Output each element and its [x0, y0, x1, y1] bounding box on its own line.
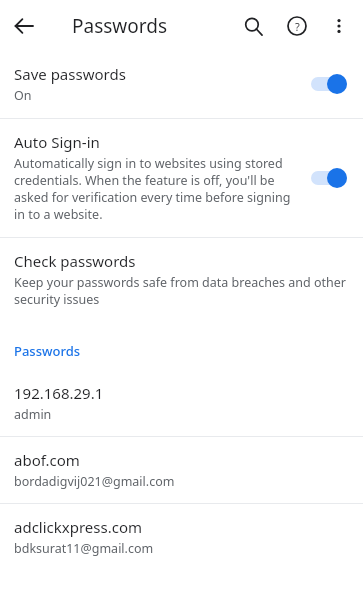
- other: Toggle: [311, 73, 347, 95]
- button[interactable]: 192.168.29.1: [0, 370, 363, 436]
- staticText: Save passwords: [14, 64, 126, 84]
- staticText: Passwords: [14, 342, 81, 360]
- button[interactable]: Check passwords: [0, 238, 363, 322]
- button[interactable]: Auto Sign-in: [0, 119, 363, 237]
- staticText: Keep your passwords safe from data breac…: [14, 274, 347, 308]
- button[interactable]: Save passwords: [0, 52, 363, 118]
- staticText: abof.com: [14, 450, 80, 470]
- button[interactable]: Search: [231, 4, 275, 48]
- staticText: bordadigvij021@gmail.com: [14, 473, 175, 490]
- staticText: bdksurat11@gmail.com: [14, 540, 154, 557]
- staticText: On: [14, 87, 32, 104]
- staticText: Auto Sign-in: [14, 132, 100, 152]
- staticText: 192.168.29.1: [14, 383, 104, 403]
- staticText: Automatically sign in to websites using …: [14, 155, 303, 223]
- staticText: Passwords: [72, 13, 168, 39]
- staticText: admin: [14, 406, 52, 423]
- button[interactable]: Help: [275, 4, 319, 48]
- button[interactable]: abof.com: [0, 437, 363, 503]
- button[interactable]: adclickxpress.com: [0, 504, 363, 570]
- other: Toggle: [311, 167, 347, 189]
- staticText: Check passwords: [14, 251, 136, 271]
- button[interactable]: Back: [0, 2, 48, 50]
- button[interactable]: More options: [319, 6, 359, 46]
- staticText: adclickxpress.com: [14, 517, 142, 537]
- staticText: ?: [295, 19, 300, 34]
